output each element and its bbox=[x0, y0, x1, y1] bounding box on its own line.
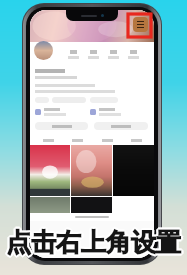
button[interactable]: Settings highlight bbox=[128, 14, 151, 37]
button[interactable] bbox=[37, 136, 59, 145]
button[interactable] bbox=[30, 145, 70, 196]
button[interactable] bbox=[94, 122, 148, 130]
button[interactable] bbox=[71, 145, 112, 196]
button[interactable] bbox=[30, 197, 70, 213]
button[interactable] bbox=[34, 41, 53, 60]
button[interactable] bbox=[96, 136, 118, 145]
button[interactable] bbox=[66, 136, 88, 145]
button[interactable] bbox=[68, 50, 79, 59]
staticText: 点击右上角设置 bbox=[6, 229, 181, 260]
button[interactable] bbox=[90, 108, 146, 116]
staticText: 点击右上角设置 bbox=[4, 227, 179, 258]
button[interactable] bbox=[88, 50, 99, 59]
staticText: 点击右上角设置 bbox=[5, 228, 180, 259]
staticText: 点击右上角设置 bbox=[7, 226, 182, 257]
staticText: 点击右上角设置 bbox=[6, 227, 181, 258]
button[interactable] bbox=[35, 122, 88, 130]
button[interactable]: Settings bbox=[133, 17, 148, 32]
staticText: 点击右上角设置 bbox=[8, 227, 183, 258]
button[interactable] bbox=[128, 50, 139, 59]
button[interactable] bbox=[113, 145, 154, 196]
staticText: 点击右上角设置 bbox=[7, 228, 182, 259]
button[interactable] bbox=[108, 50, 119, 59]
button[interactable] bbox=[35, 97, 49, 103]
staticText: 点击右上角设置 bbox=[6, 225, 181, 256]
button[interactable] bbox=[35, 108, 90, 116]
staticText: 点击右上角设置 bbox=[5, 226, 180, 257]
button[interactable] bbox=[125, 136, 147, 145]
